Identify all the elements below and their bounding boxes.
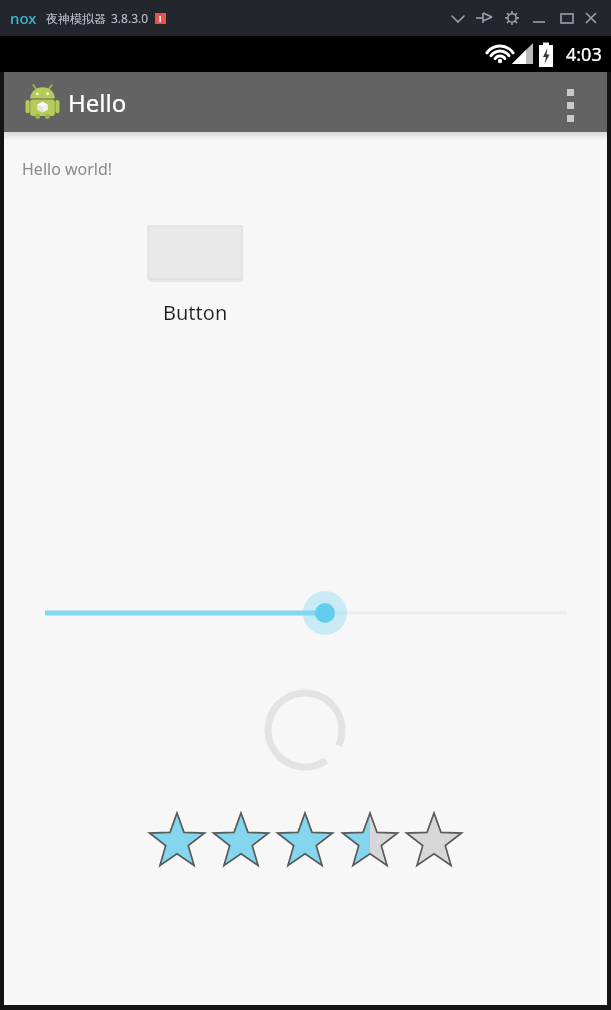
staticText: 3.8.3.0 (111, 10, 149, 26)
staticText: ! (159, 13, 162, 24)
staticText: nox (10, 8, 37, 28)
staticText: Hello world! (22, 158, 113, 180)
staticText: Button (163, 299, 228, 326)
staticText: 夜神模拟器 (46, 11, 106, 26)
staticText: 4:03 (566, 42, 602, 67)
button[interactable]: More options (555, 72, 607, 132)
staticText: Hello (68, 86, 127, 119)
button[interactable]: Button (148, 286, 242, 339)
